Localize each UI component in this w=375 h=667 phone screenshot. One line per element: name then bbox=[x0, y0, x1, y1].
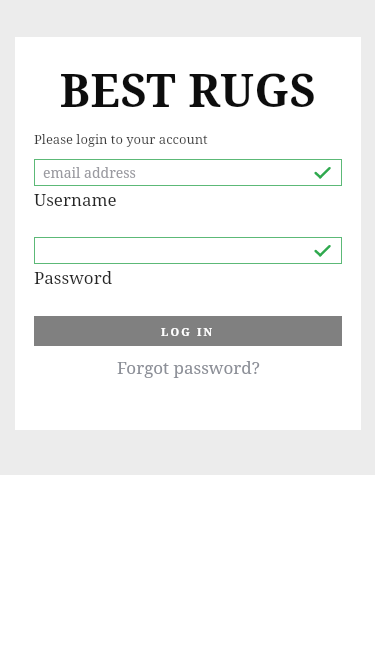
staticText: BEST RUGS bbox=[15, 59, 361, 120]
staticText: email address bbox=[43, 163, 136, 182]
staticText: Password bbox=[34, 266, 113, 289]
button[interactable]: email address bbox=[34, 159, 342, 186]
button[interactable]: Forgot password? bbox=[34, 356, 342, 379]
button[interactable]: LOG IN bbox=[34, 316, 342, 346]
staticText: Username bbox=[34, 188, 117, 211]
staticText: LOG IN bbox=[161, 324, 215, 339]
staticText: Forgot password? bbox=[117, 356, 260, 379]
button[interactable] bbox=[34, 237, 342, 264]
staticText: Please login to your account bbox=[34, 130, 208, 148]
